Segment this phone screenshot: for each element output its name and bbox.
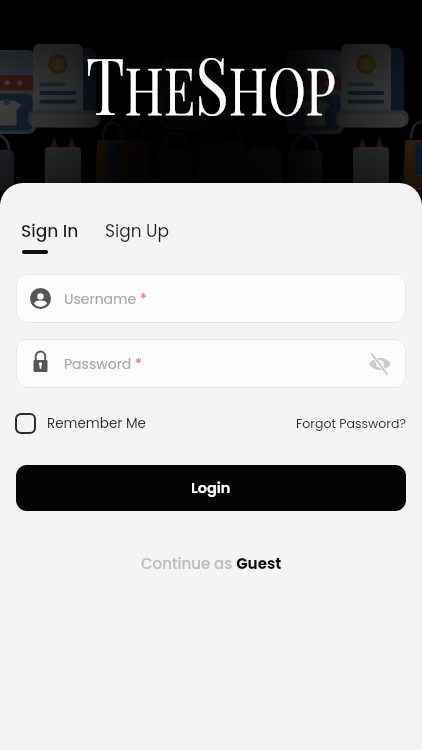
button[interactable]: Sign Up xyxy=(105,219,170,243)
staticText: THESHOP xyxy=(86,31,336,135)
button[interactable]: Show password xyxy=(367,351,393,377)
button[interactable]: Username * xyxy=(16,274,406,323)
staticText: Remember Me xyxy=(47,414,146,433)
staticText: Username * xyxy=(64,289,147,309)
button[interactable]: Password * xyxy=(16,339,406,388)
button[interactable]: Continue as Guest xyxy=(141,553,282,574)
button[interactable]: Forgot Password? xyxy=(296,415,406,432)
staticText: Login xyxy=(191,478,231,498)
button[interactable]: Remember Me xyxy=(15,413,146,434)
button[interactable]: Sign In xyxy=(21,219,79,243)
staticText: Password * xyxy=(64,354,142,374)
button[interactable]: Login xyxy=(16,465,406,511)
